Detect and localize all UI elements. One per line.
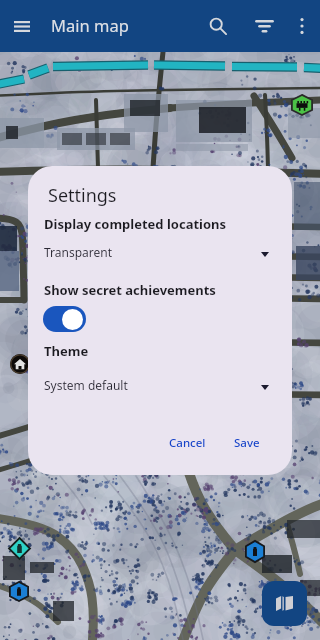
button[interactable]: Home location (10, 354, 30, 374)
button[interactable]: Cancel (159, 428, 216, 458)
button[interactable]: Map layers (262, 581, 307, 626)
button[interactable]: Open navigation menu (4, 8, 40, 44)
staticText: Show secret achievements (44, 281, 216, 299)
staticText: Main map (51, 14, 129, 36)
button[interactable]: More options (284, 8, 320, 44)
button[interactable]: Electronics location (291, 94, 313, 116)
staticText: Display completed locations (44, 215, 227, 233)
button[interactable]: Transparent (28, 241, 292, 263)
staticText: Theme (44, 342, 89, 360)
button[interactable]: Location marker (245, 540, 265, 563)
staticText: Settings (48, 183, 117, 208)
button[interactable]: System default (28, 374, 292, 396)
staticText: Save (234, 435, 260, 451)
button[interactable]: Save (224, 428, 270, 458)
button[interactable]: Search (200, 8, 236, 44)
staticText: System default (44, 377, 128, 393)
button[interactable]: Show secret achievements (43, 306, 86, 332)
staticText: Transparent (44, 244, 113, 260)
staticText: Cancel (169, 435, 206, 451)
button[interactable]: Location marker (9, 581, 29, 602)
button[interactable]: Completed location (8, 537, 31, 560)
button[interactable]: Filter (246, 8, 282, 44)
